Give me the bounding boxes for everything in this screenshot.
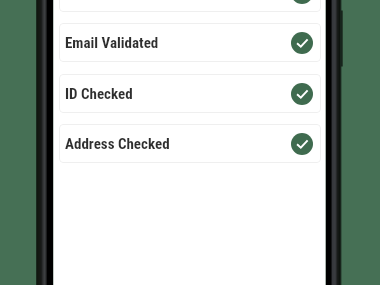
- other: Verified: [291, 32, 313, 54]
- other: Verified: [291, 0, 313, 4]
- staticText: Email Validated: [65, 34, 159, 52]
- button[interactable]: Email Validated: [59, 23, 321, 62]
- button[interactable]: ID Checked: [59, 74, 321, 113]
- staticText: ID Checked: [65, 85, 133, 103]
- button[interactable]: Address Checked: [59, 124, 321, 163]
- other: Verified: [291, 133, 313, 155]
- button[interactable]: Phone Verified: [59, 0, 321, 12]
- other: Verified: [291, 83, 313, 105]
- staticText: Address Checked: [65, 135, 170, 153]
